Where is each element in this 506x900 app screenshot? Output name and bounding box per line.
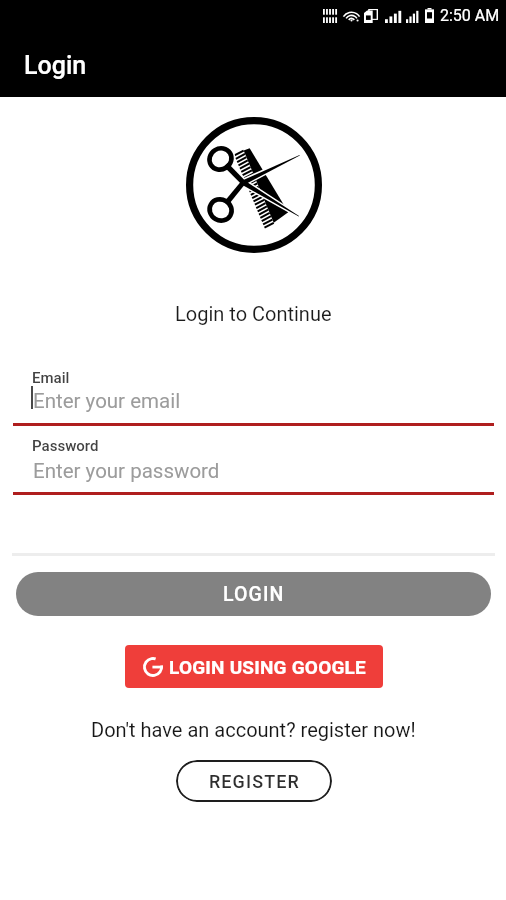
staticText: LOGIN USING GOOGLE (169, 656, 366, 678)
staticText: LOGIN (223, 583, 285, 606)
staticText: Login (24, 51, 87, 80)
staticText: Password (32, 437, 99, 455)
other: Google (143, 657, 163, 677)
button[interactable]: Google (125, 645, 383, 688)
button[interactable]: LOGIN (16, 572, 491, 616)
staticText: Enter your email (33, 389, 181, 413)
staticText: Enter your password (33, 459, 220, 483)
staticText: Login to Continue (175, 302, 332, 325)
other: Barber shop logo (186, 117, 322, 253)
staticText: Email (32, 369, 70, 387)
staticText: Don't have an account? register now! (91, 718, 416, 741)
button[interactable]: REGISTER (176, 760, 332, 802)
staticText: REGISTER (209, 771, 300, 792)
staticText: 2:50 AM (440, 6, 500, 25)
